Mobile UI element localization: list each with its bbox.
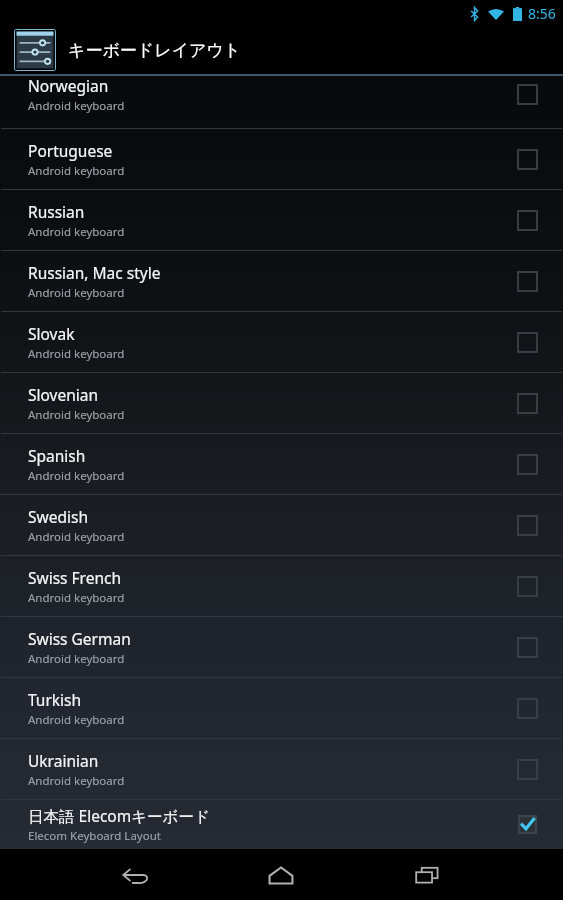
- staticText: 日本語 Elecomキーボード: [28, 805, 210, 826]
- button[interactable]: Select Swiss French: [505, 564, 549, 608]
- staticText: Swedish: [28, 506, 88, 527]
- staticText: Russian: [28, 201, 85, 222]
- staticText: Russian, Mac style: [28, 262, 161, 283]
- staticText: Android keyboard: [28, 346, 125, 362]
- staticText: Spanish: [28, 445, 86, 466]
- staticText: Android keyboard: [28, 712, 125, 728]
- button[interactable]: Russian: [0, 190, 563, 250]
- staticText: Swiss French: [28, 567, 122, 588]
- staticText: Norwegian: [28, 75, 109, 96]
- staticText: Elecom Keyboard Layout: [28, 828, 161, 844]
- button[interactable]: Spanish: [0, 434, 563, 494]
- button[interactable]: Select Swiss German: [505, 625, 549, 669]
- button[interactable]: Select Norwegian: [505, 72, 549, 116]
- staticText: Android keyboard: [28, 163, 125, 179]
- button[interactable]: Norwegian: [0, 76, 563, 128]
- staticText: Android keyboard: [28, 224, 125, 240]
- staticText: Turkish: [28, 689, 82, 710]
- button[interactable]: Select Swedish: [505, 503, 549, 547]
- button[interactable]: Select Portuguese: [505, 137, 549, 181]
- staticText: Android keyboard: [28, 773, 125, 789]
- staticText: Android keyboard: [28, 285, 125, 301]
- button[interactable]: Select Ukrainian: [505, 747, 549, 791]
- button[interactable]: Ukrainian: [0, 739, 563, 799]
- button[interactable]: Select Slovak: [505, 320, 549, 364]
- button[interactable]: App icon: [14, 29, 56, 71]
- button[interactable]: Recent apps: [396, 851, 458, 899]
- staticText: キーボードレイアウト: [68, 40, 242, 61]
- button[interactable]: Home: [250, 851, 312, 899]
- button[interactable]: Russian, Mac style: [0, 251, 563, 311]
- button[interactable]: Slovak: [0, 312, 563, 372]
- button[interactable]: Select Russian, Mac style: [505, 259, 549, 303]
- staticText: Android keyboard: [28, 529, 125, 545]
- staticText: Portuguese: [28, 140, 113, 161]
- staticText: Android keyboard: [28, 590, 125, 606]
- button[interactable]: Select Russian: [505, 198, 549, 242]
- button[interactable]: Select Turkish: [505, 686, 549, 730]
- staticText: 8:56: [528, 4, 556, 23]
- button[interactable]: Slovenian: [0, 373, 563, 433]
- button[interactable]: 日本語 Elecomキーボード: [0, 800, 563, 848]
- staticText: Slovenian: [28, 384, 99, 405]
- button[interactable]: Back: [104, 851, 166, 899]
- button[interactable]: Portuguese: [0, 129, 563, 189]
- button[interactable]: Select Spanish: [505, 442, 549, 486]
- button[interactable]: Selected 日本語 Elecomキーボード: [505, 802, 549, 846]
- staticText: Slovak: [28, 323, 75, 344]
- staticText: Ukrainian: [28, 750, 99, 771]
- button[interactable]: Swiss German: [0, 617, 563, 677]
- button[interactable]: Swiss French: [0, 556, 563, 616]
- staticText: Android keyboard: [28, 468, 125, 484]
- staticText: Android keyboard: [28, 407, 125, 423]
- button[interactable]: Select Slovenian: [505, 381, 549, 425]
- button[interactable]: Turkish: [0, 678, 563, 738]
- button[interactable]: Swedish: [0, 495, 563, 555]
- staticText: Swiss German: [28, 628, 131, 649]
- staticText: Android keyboard: [28, 651, 125, 667]
- staticText: Android keyboard: [28, 98, 125, 114]
